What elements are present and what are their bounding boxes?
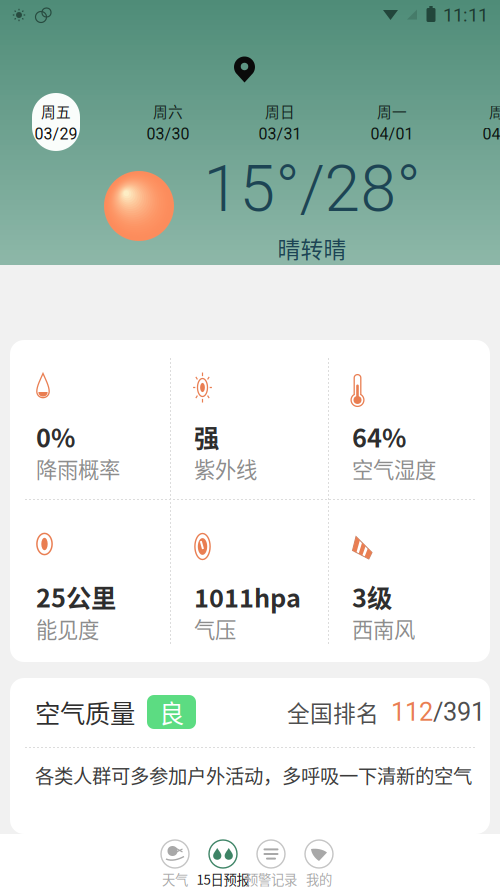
staticText: 15°/28° — [203, 151, 420, 226]
button[interactable]: 周日 — [224, 91, 336, 153]
staticText: 天气 — [162, 869, 188, 889]
staticText: 周一 — [377, 100, 407, 122]
button[interactable]: 天气 — [151, 838, 199, 888]
staticText: 周二 — [489, 100, 500, 122]
staticText: 空气质量 — [35, 694, 135, 730]
button[interactable]: 15日预报 — [199, 838, 247, 888]
staticText: /391 — [433, 697, 485, 727]
staticText: 强 — [194, 418, 219, 455]
button[interactable]: 周五 — [0, 91, 112, 153]
staticText: 04/02 — [482, 125, 500, 143]
staticText: 03/29 — [34, 125, 77, 143]
staticText: 全国排名 — [287, 696, 379, 728]
staticText: 气压 — [194, 613, 236, 644]
staticText: 1011hpa — [194, 578, 301, 615]
staticText: 11:11 — [443, 4, 488, 26]
staticText: 112 — [391, 697, 433, 727]
staticText: 3级 — [352, 578, 392, 615]
staticText: 25公里 — [36, 578, 116, 615]
staticText: 周六 — [153, 100, 183, 122]
staticText: 良 — [159, 694, 184, 730]
staticText: 周日 — [265, 100, 295, 122]
button[interactable]: 周二 — [448, 91, 500, 153]
staticText: 空气湿度 — [352, 453, 436, 484]
button[interactable]: 预警记录 — [247, 838, 295, 888]
button[interactable]: 我的 — [295, 838, 343, 888]
button[interactable]: 周一 — [336, 91, 448, 153]
staticText: 03/31 — [258, 125, 301, 143]
staticText: 周五 — [41, 100, 71, 122]
staticText: 64% — [352, 418, 406, 455]
staticText: 能见度 — [36, 613, 99, 644]
staticText: 西南风 — [352, 613, 415, 644]
staticText: 04/01 — [370, 125, 413, 143]
staticText: 晴转晴 — [277, 232, 346, 264]
staticText: 紫外线 — [194, 453, 257, 484]
staticText: 03/30 — [146, 125, 189, 143]
staticText: 降雨概率 — [36, 453, 120, 484]
staticText: 0% — [36, 418, 75, 455]
staticText: 预警记录 — [245, 869, 297, 889]
button[interactable]: 周六 — [112, 91, 224, 153]
staticText: 我的 — [306, 869, 332, 889]
staticText: 15日预报 — [196, 869, 249, 889]
staticText: 各类人群可多参加户外活动，多呼吸一下清新的空气 — [35, 761, 472, 789]
